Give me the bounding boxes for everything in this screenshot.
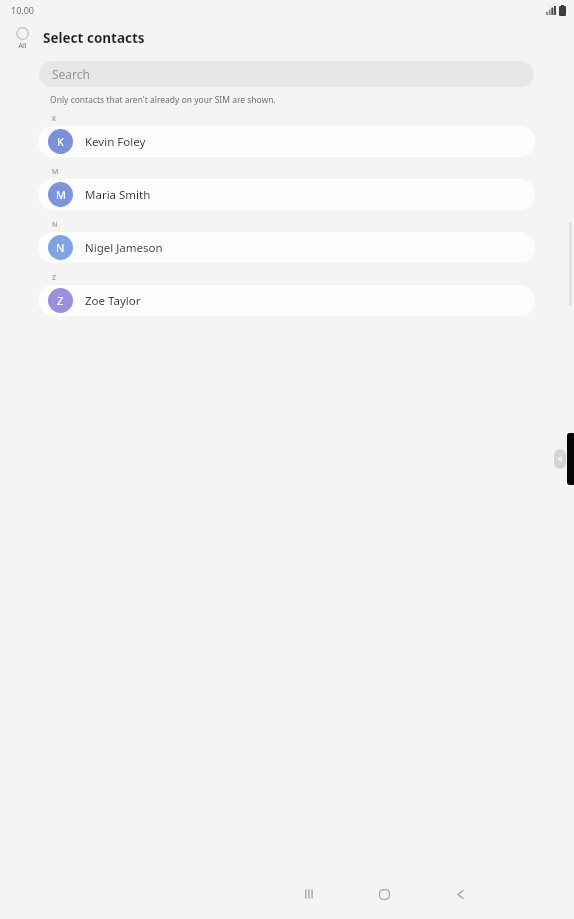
staticText: Kevin Foley: [85, 134, 146, 150]
button[interactable]: Z: [38, 285, 535, 316]
staticText: N: [56, 240, 65, 255]
staticText: Search: [52, 66, 90, 82]
staticText: K: [52, 114, 57, 124]
staticText: 10.00: [11, 4, 35, 16]
button[interactable]: Select all contacts: [8, 27, 36, 51]
button[interactable]: Search: [39, 61, 534, 87]
staticText: Zoe Taylor: [85, 293, 141, 309]
staticText: K: [57, 134, 64, 149]
staticText: Z: [52, 273, 57, 283]
staticText: M: [56, 187, 66, 202]
button[interactable]: M: [38, 179, 535, 210]
staticText: M: [52, 167, 59, 177]
staticText: Only contacts that aren't already on you…: [50, 94, 276, 106]
staticText: Z: [57, 293, 64, 308]
staticText: Maria Smith: [85, 187, 151, 203]
button[interactable]: Edge panel handle: [562, 433, 574, 485]
button[interactable]: Back: [422, 869, 498, 919]
button[interactable]: Home: [346, 869, 422, 919]
staticText: Select contacts: [43, 29, 145, 47]
staticText: Nigel Jameson: [85, 240, 163, 256]
button[interactable]: Recents: [270, 869, 346, 919]
button[interactable]: N: [38, 232, 535, 263]
button[interactable]: K: [38, 126, 535, 157]
staticText: All: [18, 41, 27, 51]
staticText: N: [52, 220, 58, 230]
